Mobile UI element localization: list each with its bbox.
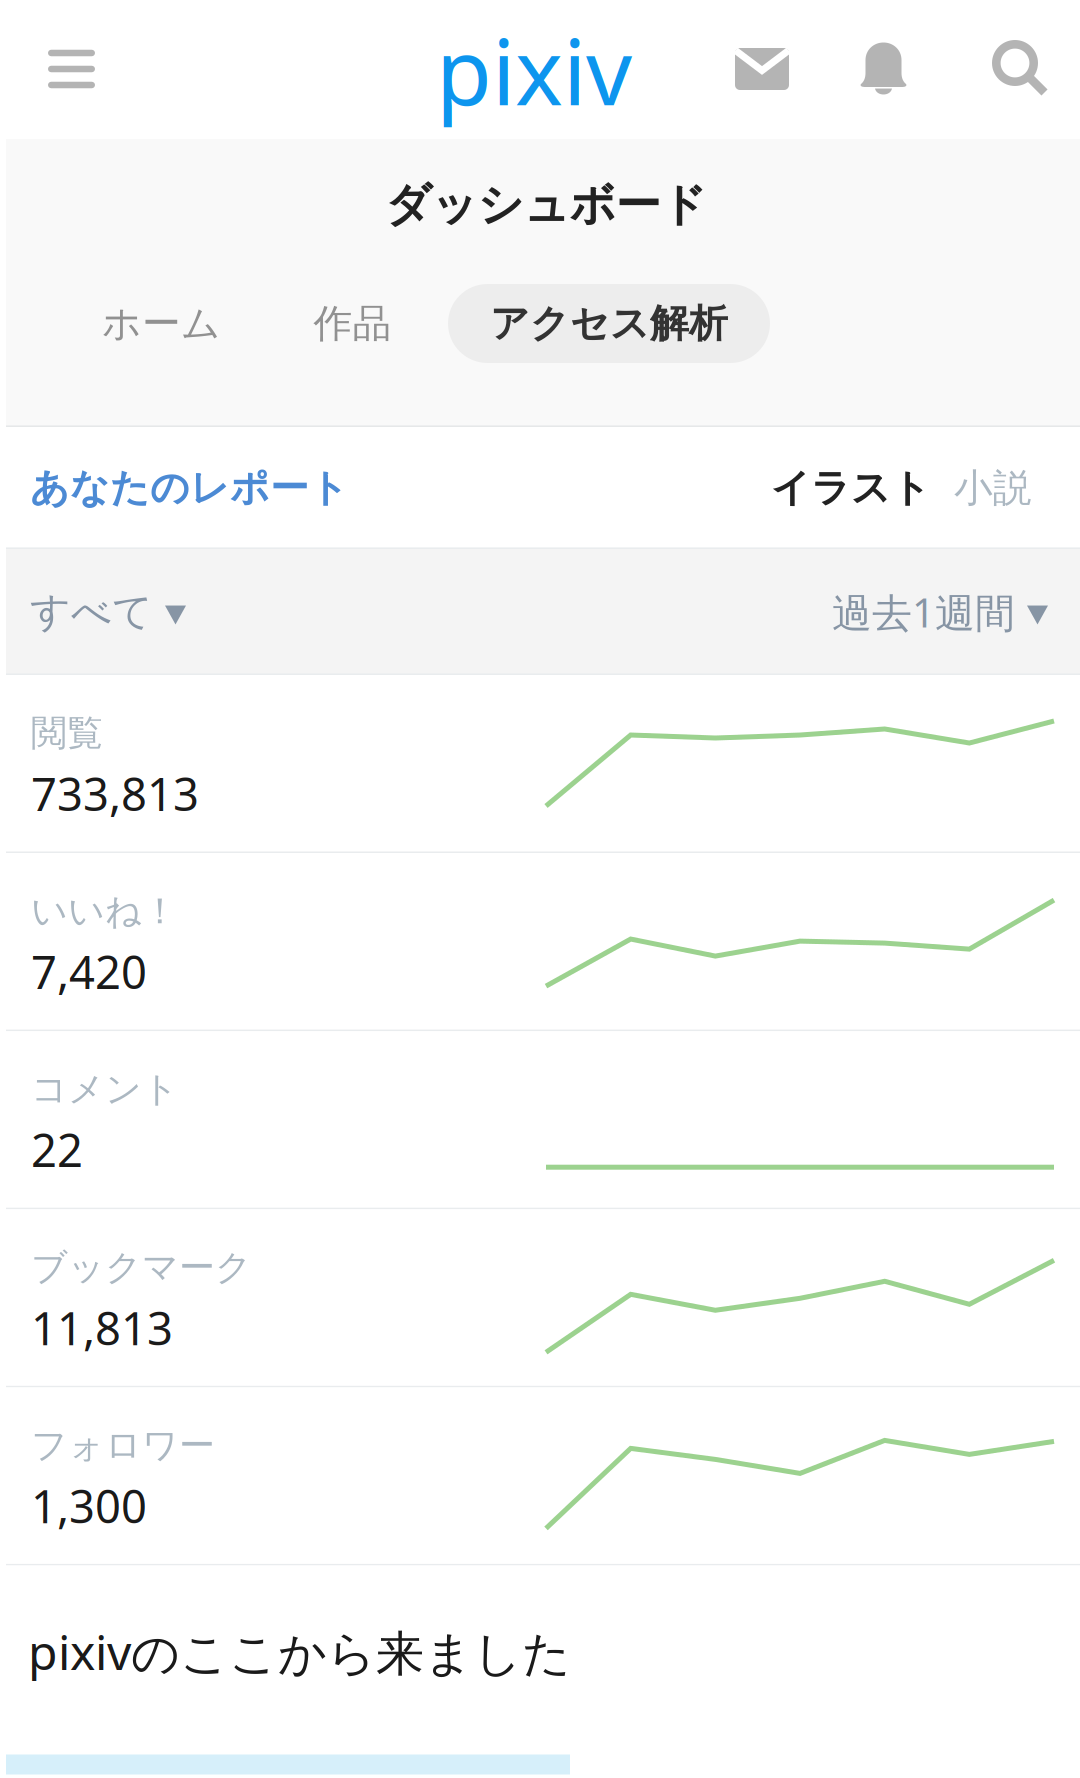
staticText: 7,420 [31,941,147,1001]
staticText: いいね！ [31,889,178,933]
button[interactable]: あなたのレポート [30,442,349,534]
button[interactable]: 過去1週間 [832,563,1048,660]
staticText: ダッシュボード [385,177,706,233]
button[interactable]: 小説 [931,442,1032,534]
staticText: 733,813 [31,763,199,823]
staticText: イラスト [771,464,931,512]
button[interactable]: 作品 [257,284,448,363]
button[interactable]: すべて [30,565,186,658]
button[interactable]: イラスト [771,442,931,534]
staticText: 作品 [313,300,391,347]
button[interactable]: Notifications [817,0,950,138]
button[interactable]: ホーム [66,284,257,363]
button[interactable]: Search [950,0,1080,138]
staticText: 過去1週間 [832,585,1015,638]
button[interactable]: Menu [0,0,143,138]
staticText: フォロワー [31,1423,215,1468]
staticText: pixivのここから来ました [28,1619,571,1683]
staticText: 11,813 [31,1297,173,1358]
staticText: 22 [31,1119,83,1180]
staticText: ホーム [102,300,221,347]
staticText: pixiv [436,10,632,130]
button[interactable]: Messages [707,0,817,138]
staticText: 1,300 [31,1476,147,1536]
staticText: 閲覧 [31,711,103,755]
button[interactable]: アクセス解析 [448,284,770,363]
staticText: ブックマーク [31,1245,252,1289]
staticText: すべて [30,587,153,636]
staticText: アクセス解析 [490,300,728,347]
staticText: コメント [31,1067,179,1111]
staticText: あなたのレポート [30,464,349,512]
staticText: 小説 [954,464,1032,512]
